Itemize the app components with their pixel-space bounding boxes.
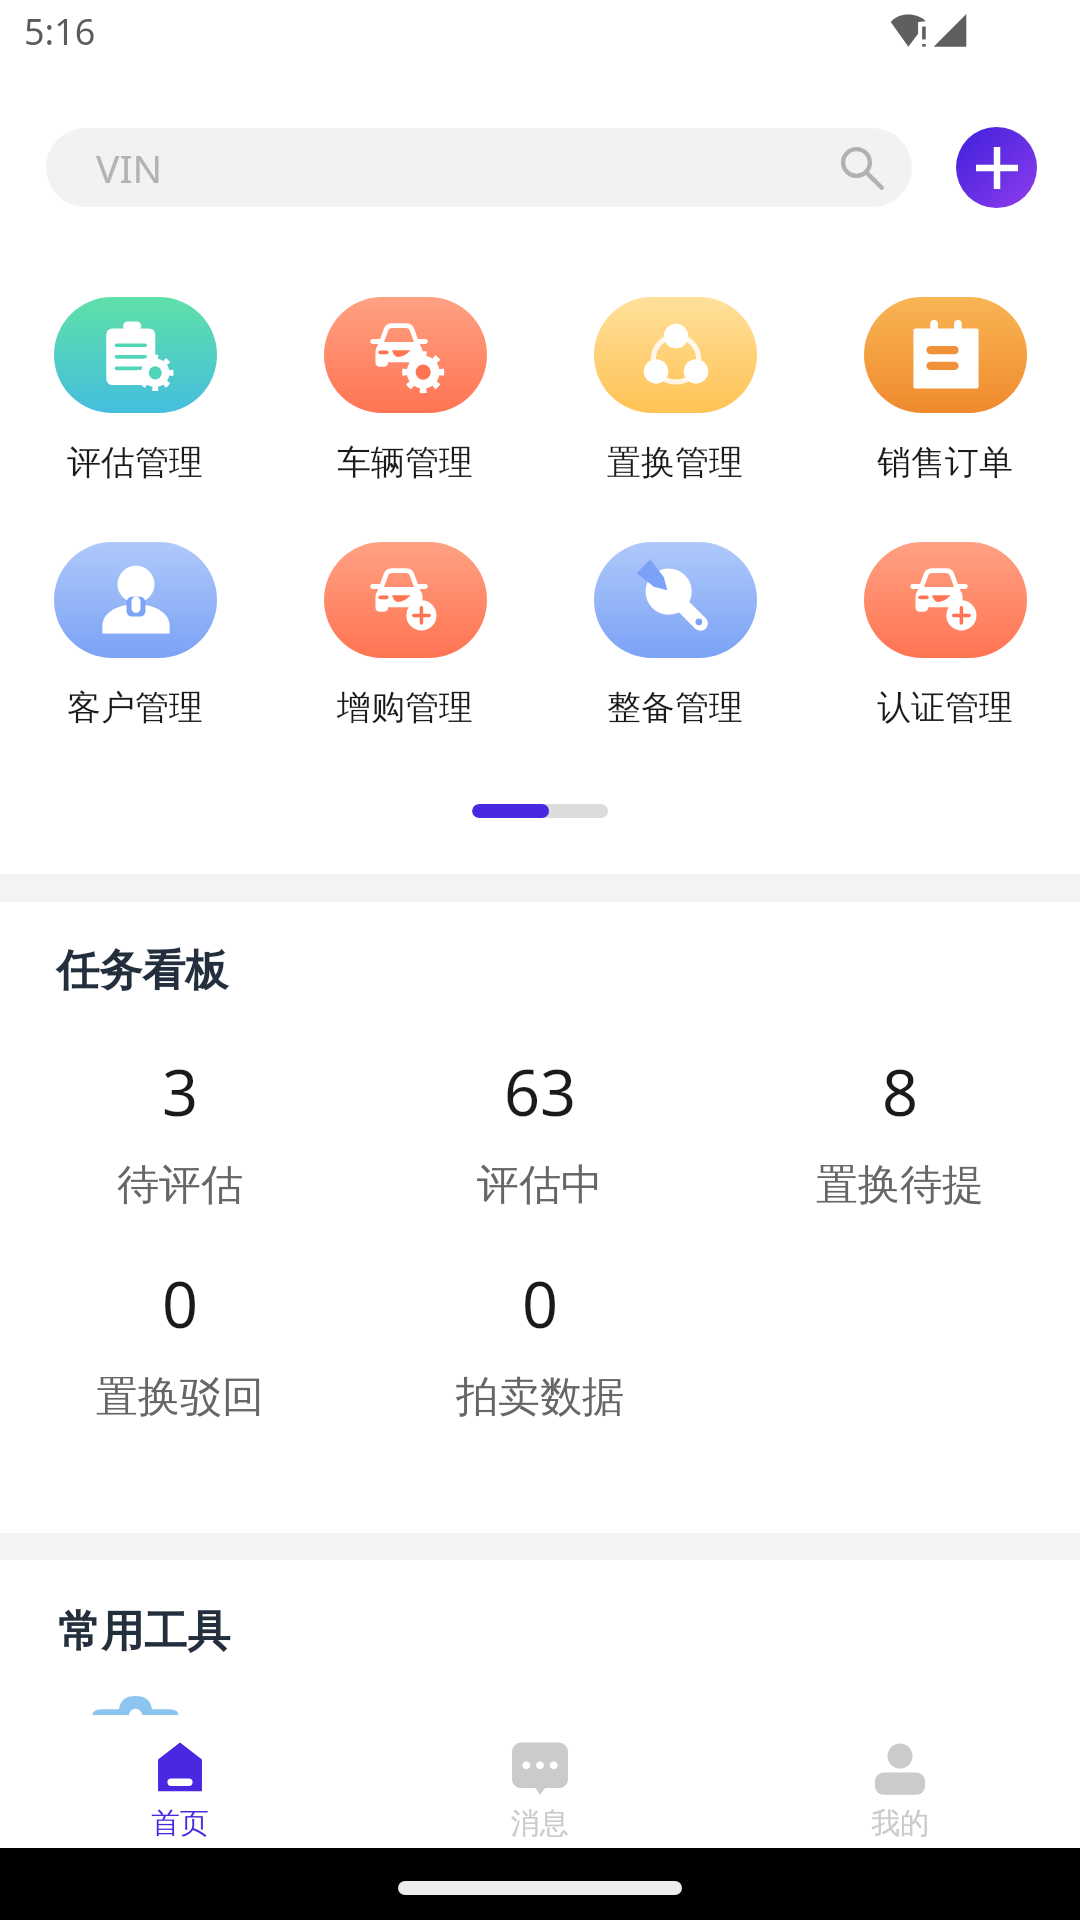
staticText: 置换待提 (816, 1159, 984, 1212)
staticText: 评估中 (477, 1159, 603, 1212)
staticText: 63 (504, 1049, 577, 1135)
staticText: 0 (162, 1261, 199, 1347)
staticText: 车辆管理 (337, 441, 473, 484)
staticText: 评估管理 (67, 441, 203, 484)
button[interactable]: 3 (0, 1049, 360, 1212)
button[interactable]: 客户管理 (0, 542, 270, 729)
staticText: 待评估 (117, 1159, 243, 1212)
staticText: 拍卖数据 (456, 1371, 624, 1424)
staticText: 3 (162, 1049, 199, 1135)
staticText: 消息 (511, 1805, 569, 1842)
button[interactable]: 评估管理 (0, 297, 270, 484)
button[interactable]: 销售订单 (810, 297, 1080, 484)
button[interactable]: Tool (92, 1696, 179, 1770)
button[interactable]: 消息 (360, 1715, 720, 1842)
button[interactable]: 8 (720, 1049, 1080, 1212)
staticText: 5:16 (24, 7, 96, 56)
button[interactable]: 车辆管理 (270, 297, 540, 484)
staticText: 销售订单 (877, 441, 1013, 484)
staticText: 置换驳回 (96, 1371, 264, 1424)
staticText: 客户管理 (67, 686, 203, 729)
staticText: 增购管理 (337, 686, 473, 729)
staticText: 认证管理 (877, 686, 1013, 729)
button[interactable]: 置换管理 (540, 297, 810, 484)
button[interactable]: 整备管理 (540, 542, 810, 729)
staticText: 首页 (151, 1805, 209, 1842)
staticText: 我的 (871, 1805, 929, 1842)
staticText: 8 (882, 1049, 919, 1135)
staticText: VIN (96, 141, 163, 194)
button[interactable]: 0 (0, 1261, 360, 1424)
staticText: 置换管理 (607, 441, 743, 484)
button[interactable]: 63 (360, 1049, 720, 1212)
staticText: 常用工具 (58, 1605, 230, 1659)
button[interactable]: 我的 (720, 1715, 1080, 1842)
button[interactable]: Add (956, 127, 1037, 208)
button[interactable]: VIN (46, 128, 912, 207)
staticText: 0 (522, 1261, 559, 1347)
button[interactable]: 增购管理 (270, 542, 540, 729)
staticText: 整备管理 (607, 686, 743, 729)
button[interactable]: 首页 (0, 1715, 360, 1842)
button[interactable]: 认证管理 (810, 542, 1080, 729)
staticText: 任务看板 (56, 944, 228, 998)
button[interactable]: 0 (360, 1261, 720, 1424)
